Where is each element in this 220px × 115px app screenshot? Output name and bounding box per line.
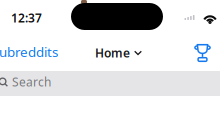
- staticText: ubreddits: [0, 43, 58, 61]
- button[interactable]: Home: [95, 45, 142, 61]
- button[interactable]: Search: [0, 71, 220, 96]
- staticText: 12:37: [11, 10, 42, 26]
- staticText: Home: [95, 45, 130, 61]
- button[interactable]: ubreddits: [0, 43, 58, 61]
- staticText: Search: [12, 74, 51, 90]
- button[interactable]: Trophies: [194, 43, 211, 63]
